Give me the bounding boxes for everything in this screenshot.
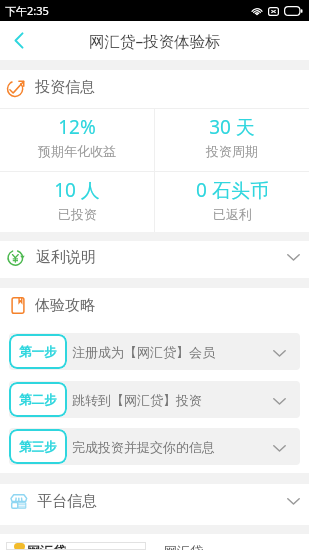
- button[interactable]: Back: [0, 21, 38, 60]
- staticText: 体验攻略: [35, 296, 95, 315]
- staticText: 0 石头币: [196, 177, 269, 203]
- staticText: 30 天: [209, 114, 255, 140]
- staticText: 投资周期: [206, 143, 258, 159]
- staticText: 投资信息: [35, 78, 95, 97]
- button[interactable]: 返利说明: [0, 241, 309, 278]
- button[interactable]: 第一步: [9, 333, 300, 370]
- staticText: 下午2:35: [5, 3, 49, 18]
- staticText: 完成投资并提交你的信息: [72, 439, 273, 455]
- staticText: 第一步: [19, 344, 57, 360]
- button[interactable]: 第二步: [9, 381, 300, 418]
- staticText: 网汇贷: [27, 543, 66, 550]
- button[interactable]: 平台信息: [0, 484, 309, 525]
- staticText: 网汇贷: [164, 543, 203, 550]
- staticText: 10 人: [54, 177, 100, 203]
- staticText: 已返利: [213, 206, 252, 222]
- staticText: 跳转到【网汇贷】投资: [72, 392, 273, 408]
- staticText: 12%: [58, 114, 96, 140]
- button[interactable]: 第三步: [9, 428, 300, 465]
- staticText: 第二步: [19, 392, 57, 408]
- staticText: 注册成为【网汇贷】会员: [72, 344, 273, 360]
- staticText: 预期年化收益: [38, 143, 116, 159]
- staticText: 网汇贷–投资体验标: [89, 30, 221, 51]
- staticText: 已投资: [58, 206, 97, 222]
- staticText: 平台信息: [37, 492, 97, 511]
- staticText: 第三步: [19, 439, 57, 455]
- staticText: 返利说明: [36, 248, 96, 267]
